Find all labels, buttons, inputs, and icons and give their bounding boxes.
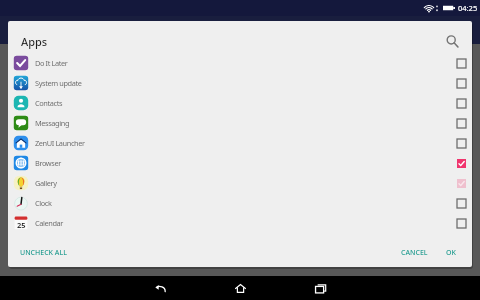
button[interactable]: Search: [440, 29, 464, 53]
staticText: Messaging: [35, 118, 70, 128]
button[interactable]: Gallery: [8, 173, 472, 193]
staticText: Clock: [35, 198, 52, 208]
button[interactable]: Do It Later: [8, 53, 472, 73]
staticText: Apps: [21, 34, 48, 49]
button[interactable]: CANCEL: [394, 243, 435, 263]
button[interactable]: Clock: [8, 193, 472, 213]
button[interactable]: UNCHECK ALL: [13, 243, 74, 263]
button[interactable]: Recent apps: [280, 276, 360, 300]
button[interactable]: Browser: [8, 153, 472, 173]
button[interactable]: Contacts: [8, 93, 472, 113]
button[interactable]: ZenUI Launcher: [8, 133, 472, 153]
staticText: 25: [17, 220, 26, 230]
staticText: OK: [446, 248, 456, 258]
button[interactable]: 25: [8, 213, 472, 233]
staticText: ZenUI Launcher: [35, 138, 85, 148]
staticText: Do It Later: [35, 58, 68, 68]
staticText: CANCEL: [401, 248, 428, 258]
button[interactable]: Messaging: [8, 113, 472, 133]
staticText: UNCHECK ALL: [20, 248, 67, 258]
staticText: Contacts: [35, 98, 63, 108]
staticText: System update: [35, 78, 82, 88]
button[interactable]: OK: [439, 243, 463, 263]
staticText: 04:25: [458, 3, 478, 13]
staticText: Gallery: [35, 178, 57, 188]
button[interactable]: Home: [200, 276, 280, 300]
staticText: Browser: [35, 158, 61, 168]
staticText: Calendar: [35, 218, 64, 228]
button[interactable]: Back: [120, 276, 200, 300]
button[interactable]: System update: [8, 73, 472, 93]
